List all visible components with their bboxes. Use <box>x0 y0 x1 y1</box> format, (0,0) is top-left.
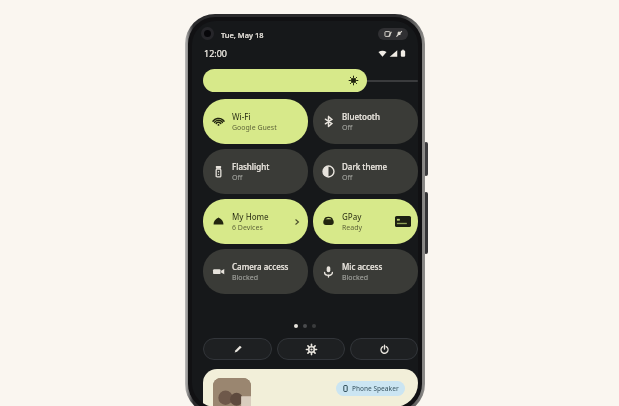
button[interactable]: Phone Speaker <box>342 384 399 393</box>
button[interactable]: Flashlight <box>203 149 308 194</box>
staticText: Dark theme <box>342 161 388 172</box>
button[interactable]: Edit <box>203 338 272 360</box>
button[interactable]: Power <box>350 338 418 360</box>
button[interactable]: Privacy indicators <box>378 28 408 40</box>
button[interactable]: My Home <box>203 199 308 244</box>
staticText: 6 Devices <box>232 223 263 233</box>
staticText: 12:00 <box>204 47 228 59</box>
button[interactable]: Wi-Fi <box>203 99 308 144</box>
staticText: Wi-Fi <box>232 111 251 122</box>
staticText: My Home <box>232 211 269 222</box>
staticText: Camera access <box>232 261 289 272</box>
button[interactable]: Brightness <box>203 69 418 92</box>
staticText: Flashlight <box>232 161 270 172</box>
staticText: Bluetooth <box>342 111 380 122</box>
button[interactable]: GPay <box>313 199 418 244</box>
staticText: Blocked <box>342 273 368 283</box>
button[interactable]: Camera access <box>203 249 308 294</box>
button[interactable]: Dark theme <box>313 149 418 194</box>
staticText: GPay <box>342 211 362 222</box>
staticText: Off <box>342 173 353 183</box>
button[interactable]: Phone Speaker <box>203 369 418 406</box>
button[interactable]: Bluetooth <box>313 99 418 144</box>
staticText: Ready <box>342 223 363 233</box>
staticText: Blocked <box>232 273 258 283</box>
staticText: Google Guest <box>232 123 277 133</box>
staticText: Off <box>232 173 243 183</box>
staticText: Mic access <box>342 261 383 272</box>
button[interactable]: Mic access <box>313 249 418 294</box>
button[interactable]: Settings <box>277 338 345 360</box>
staticText: Phone Speaker <box>352 384 399 393</box>
staticText: Off <box>342 123 353 133</box>
staticText: Tue, May 18 <box>221 30 264 40</box>
